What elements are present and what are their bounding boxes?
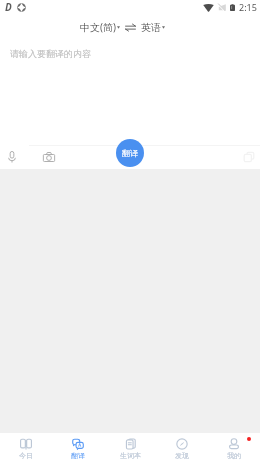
button[interactable]: Camera translate: [41, 149, 57, 165]
staticText: 今日: [19, 451, 33, 460]
button[interactable]: Paste: [241, 149, 257, 165]
staticText: 翻译: [122, 148, 138, 158]
button[interactable]: 中文(简): [77, 16, 121, 38]
button[interactable]: 翻译: [52, 433, 104, 461]
button[interactable]: 今日: [0, 433, 52, 461]
staticText: 请输入要翻译的内容: [10, 48, 91, 59]
staticText: 中文(简): [80, 20, 116, 34]
staticText: 英语: [141, 21, 161, 34]
staticText: D: [5, 0, 12, 14]
button[interactable]: 翻译: [116, 139, 144, 167]
staticText: 发现: [175, 451, 189, 460]
staticText: 2:15: [239, 1, 257, 13]
button[interactable]: 英语: [140, 17, 168, 38]
button[interactable]: Voice input: [4, 149, 20, 165]
staticText: 翻译: [71, 451, 85, 460]
staticText: 我的: [227, 451, 241, 460]
button[interactable]: 我的: [208, 433, 260, 461]
button[interactable]: 发现: [156, 433, 208, 461]
button[interactable]: 请输入要翻译的内容: [0, 40, 260, 145]
button[interactable]: 生词本: [104, 433, 156, 461]
staticText: 生词本: [120, 451, 141, 460]
button[interactable]: Swap languages: [124, 20, 136, 34]
